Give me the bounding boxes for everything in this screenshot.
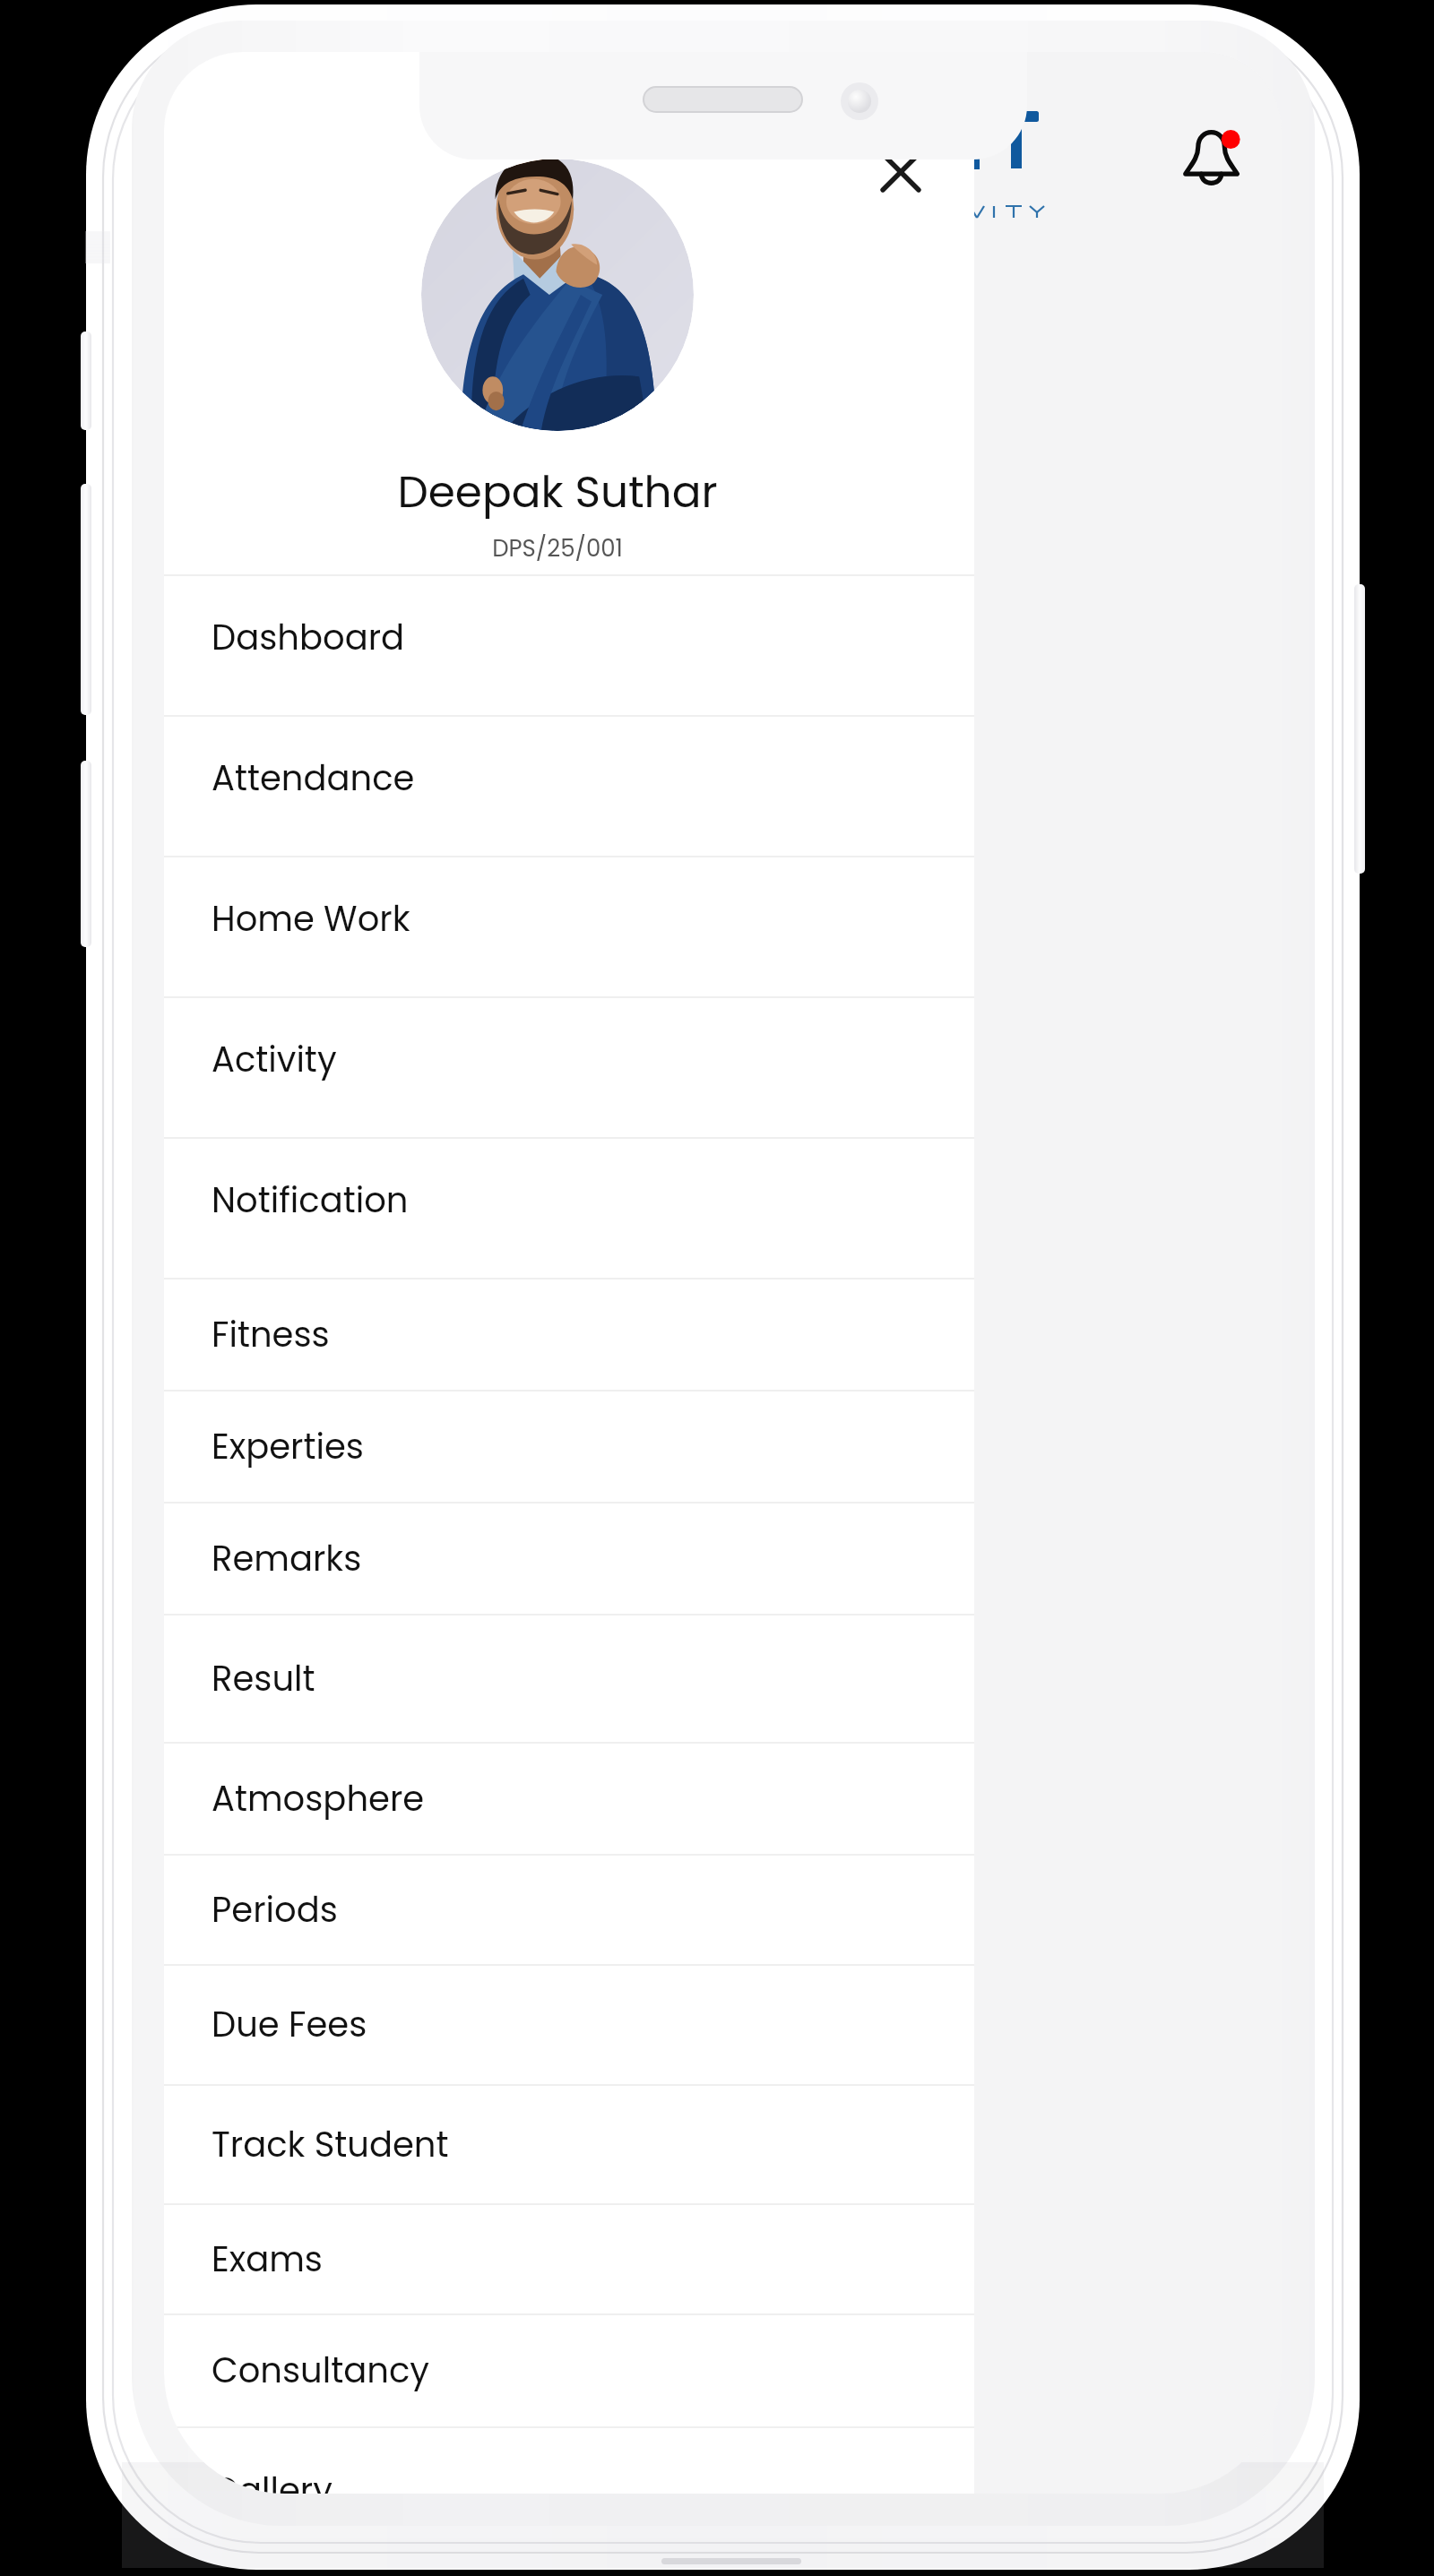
button[interactable]: Consultancy <box>164 2315 974 2426</box>
button[interactable]: Notifications <box>1180 122 1245 192</box>
button[interactable]: Remarks <box>164 1503 974 1614</box>
button[interactable]: Exams <box>164 2205 974 2313</box>
staticText: Remarks <box>212 1535 362 1583</box>
staticText: Exams <box>212 2236 323 2284</box>
button[interactable]: Result <box>164 1615 974 1742</box>
staticText: Atmosphere <box>212 1775 425 1823</box>
staticText: DPS/25/001 <box>492 532 623 564</box>
button[interactable]: Periods <box>164 1856 974 1964</box>
staticText: Notification <box>212 1176 409 1225</box>
button[interactable]: Gallery <box>164 2428 974 2494</box>
button[interactable]: Activity <box>164 998 974 1137</box>
staticText: Fitness <box>212 1311 330 1359</box>
staticText: Experties <box>212 1423 364 1471</box>
button[interactable]: Fitness <box>164 1279 974 1390</box>
staticText: Gallery <box>212 2467 333 2494</box>
staticText: Track Student <box>212 2121 449 2169</box>
button[interactable]: Atmosphere <box>164 1744 974 1854</box>
button[interactable]: Home Work <box>164 857 974 996</box>
staticText: Consultancy <box>212 2347 429 2395</box>
staticText: Dashboard <box>212 614 405 662</box>
staticText: Home Work <box>212 895 410 943</box>
button[interactable]: Due Fees <box>164 1966 974 2084</box>
button[interactable]: Close menu <box>856 127 946 217</box>
staticText: Due Fees <box>212 2001 367 2049</box>
button[interactable]: Notification <box>164 1139 974 1278</box>
button[interactable]: Dashboard <box>164 576 974 715</box>
staticText: Activity <box>212 1036 337 1084</box>
button[interactable]: Experties <box>164 1391 974 1502</box>
button[interactable]: Attendance <box>164 717 974 856</box>
staticText: Periods <box>212 1886 338 1934</box>
staticText: Deepak Suthar <box>397 461 718 522</box>
staticText: Result <box>212 1655 315 1703</box>
staticText: Attendance <box>212 754 415 803</box>
button[interactable]: Track Student <box>164 2086 974 2203</box>
